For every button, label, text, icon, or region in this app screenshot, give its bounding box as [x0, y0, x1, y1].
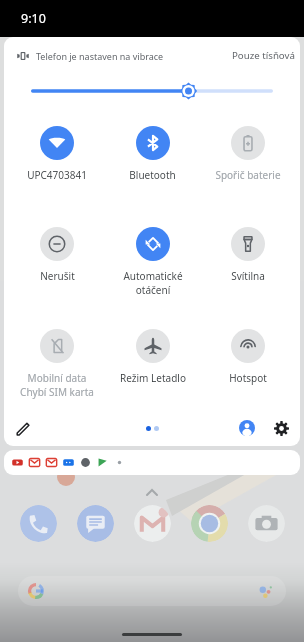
staticText: 9:10 — [21, 10, 46, 27]
button[interactable]: UPC4703841 — [9, 126, 105, 206]
button[interactable]: Mobilní data Chybí SIM karta — [9, 329, 105, 409]
staticText: Telefon je nastaven na vibrace — [36, 50, 164, 62]
button[interactable]: Uživatel — [234, 415, 260, 441]
staticText: Spořič baterie — [215, 168, 281, 182]
button[interactable]: Hotspot — [200, 329, 295, 409]
button[interactable]: Phone — [20, 505, 57, 542]
button[interactable]: Nerušit — [9, 227, 105, 307]
button[interactable]: Messages — [77, 505, 114, 542]
button[interactable] — [18, 576, 286, 606]
button[interactable]: Upravit dlaždice — [10, 415, 36, 441]
staticText: Automatické otáčení — [123, 269, 183, 297]
staticText: Svítilna — [231, 269, 265, 283]
staticText: Pouze tísňová — [232, 49, 295, 62]
staticText: Hotspot — [229, 371, 267, 385]
button[interactable]: Svítilna — [200, 227, 295, 307]
button[interactable]: Režim Letadlo — [105, 329, 200, 409]
button[interactable]: Spořič baterie — [200, 126, 295, 206]
button[interactable]: Nastavení — [268, 415, 294, 441]
button[interactable]: Automatické otáčení — [105, 227, 200, 307]
staticText: Nerušit — [40, 269, 75, 283]
staticText: Režim Letadlo — [120, 371, 186, 385]
staticText: Mobilní data Chybí SIM karta — [20, 371, 94, 399]
button[interactable]: Chrome — [191, 505, 228, 542]
staticText: Bluetooth — [129, 168, 176, 182]
staticText: UPC4703841 — [27, 168, 87, 182]
button[interactable] — [4, 450, 300, 475]
button[interactable]: Camera — [248, 505, 285, 542]
button[interactable]: Bluetooth — [105, 126, 200, 206]
button[interactable]: Gmail — [134, 505, 171, 542]
